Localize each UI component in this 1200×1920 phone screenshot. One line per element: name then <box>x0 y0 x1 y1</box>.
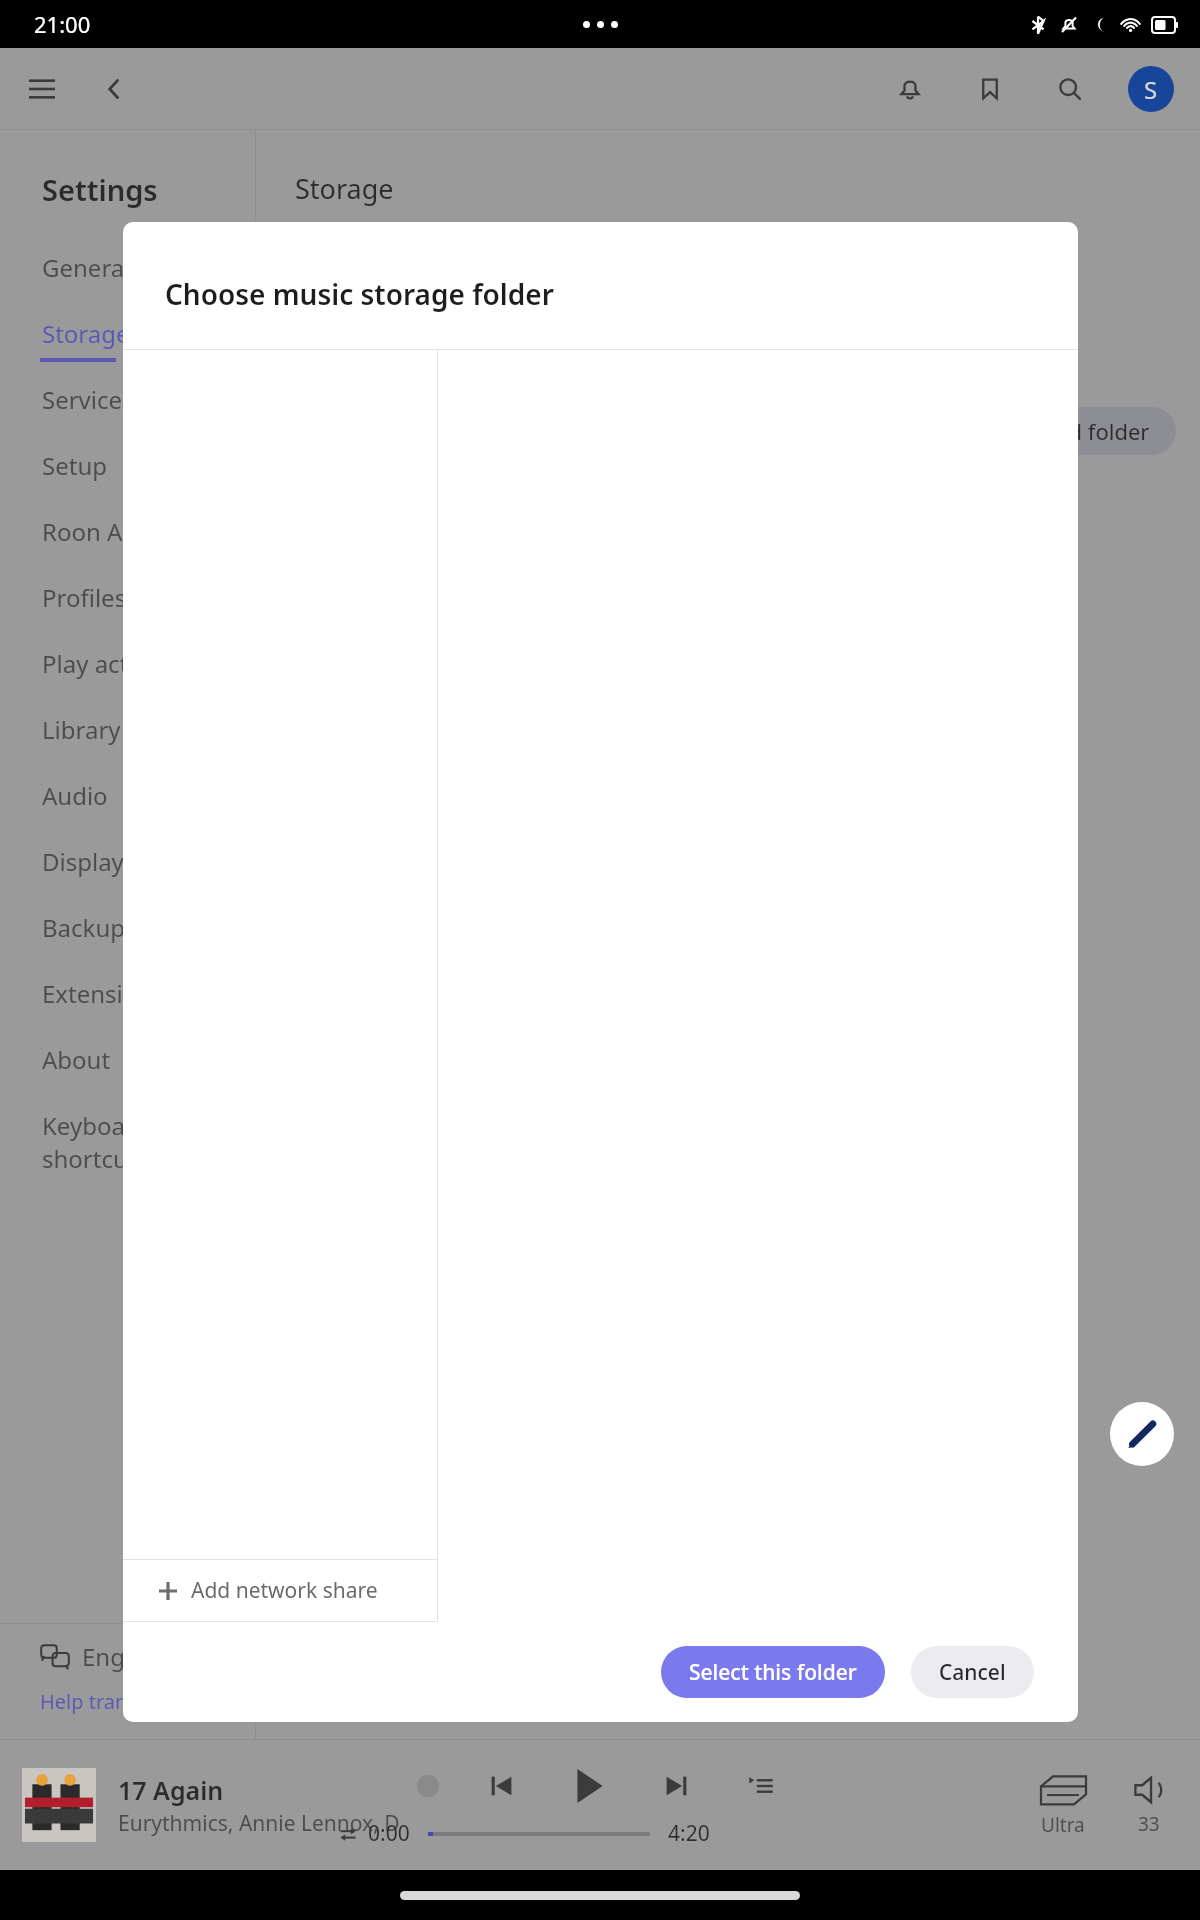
button[interactable]: Help translate Roon <box>40 1688 227 1715</box>
staticText: Add network share <box>191 1576 378 1605</box>
staticText: S <box>1144 73 1158 106</box>
staticText: Library <box>42 713 121 746</box>
staticText: 17 Again <box>118 1773 224 1807</box>
staticText: Storage <box>42 317 130 350</box>
button[interactable]: Notifications <box>888 67 932 111</box>
button[interactable]: About <box>0 1035 255 1101</box>
staticText: Ultra <box>1041 1812 1085 1838</box>
button[interactable]: Loading <box>417 1775 439 1797</box>
staticText: Profiles <box>42 581 127 614</box>
button[interactable]: Extensions <box>0 969 255 1035</box>
button[interactable]: Keyboard <box>0 1101 255 1183</box>
button[interactable]: Profiles <box>0 573 255 639</box>
button[interactable]: Profile <box>1128 66 1174 112</box>
staticText: Eurythmics, Annie Lennox, D <box>118 1809 400 1838</box>
button[interactable] <box>22 1768 96 1842</box>
staticText: Audio <box>42 779 108 812</box>
button[interactable]: English <box>40 1624 255 1688</box>
button[interactable]: Roon ARC <box>0 507 255 573</box>
staticText: Play actions <box>42 647 176 680</box>
button[interactable]: Previous <box>479 1764 523 1808</box>
staticText: 4:20 <box>668 1819 710 1848</box>
button[interactable]: Setup <box>0 441 255 507</box>
button[interactable]: General <box>0 243 255 309</box>
button[interactable]: Menu <box>18 65 66 113</box>
staticText: Backups <box>42 911 137 944</box>
staticText: 0:00 <box>368 1819 410 1848</box>
button[interactable]: Queue <box>739 1764 783 1808</box>
button[interactable] <box>428 1832 650 1836</box>
staticText: 33 <box>1138 1811 1160 1837</box>
staticText: Services <box>42 383 134 416</box>
button[interactable]: Bookmarks <box>968 67 1012 111</box>
staticText: shortcuts <box>42 1142 148 1175</box>
staticText: General <box>42 251 131 284</box>
button[interactable]: Storage <box>0 309 255 375</box>
button[interactable]: Select this folder <box>661 1646 885 1698</box>
button[interactable]: Play actions <box>0 639 255 705</box>
staticText: Extensions <box>42 977 164 1010</box>
staticText: Select this folder <box>689 1658 857 1687</box>
button[interactable]: Cancel <box>911 1646 1034 1698</box>
button[interactable]: Services <box>0 375 255 441</box>
staticText: 21:00 <box>34 9 91 39</box>
staticText: Displays <box>42 845 136 878</box>
staticText: Choose music storage folder <box>165 275 554 313</box>
button[interactable]: Next <box>655 1764 699 1808</box>
button[interactable]: Zone Ultra <box>1038 1772 1088 1838</box>
staticText: Cancel <box>939 1658 1006 1687</box>
button[interactable]: Add folder <box>1015 407 1176 455</box>
button[interactable]: Back <box>90 65 138 113</box>
button[interactable]: Edit <box>1110 1402 1174 1466</box>
staticText: Setup <box>42 449 107 482</box>
staticText: English <box>82 1640 164 1673</box>
staticText: About <box>42 1043 111 1076</box>
staticText: Keyboard <box>42 1109 150 1142</box>
button[interactable]: Displays <box>0 837 255 903</box>
staticText: Add folder <box>1041 416 1150 446</box>
button[interactable]: Audio <box>0 771 255 837</box>
button[interactable]: Backups <box>0 903 255 969</box>
staticText: Settings <box>42 170 158 209</box>
button[interactable]: Search <box>1048 67 1092 111</box>
button[interactable]: Volume <box>1132 1773 1166 1837</box>
button[interactable]: Add network share <box>123 1560 437 1621</box>
staticText: Storage <box>295 170 394 207</box>
staticText: Roon ARC <box>42 515 153 548</box>
button[interactable]: Library <box>0 705 255 771</box>
button[interactable]: Play <box>563 1760 615 1812</box>
